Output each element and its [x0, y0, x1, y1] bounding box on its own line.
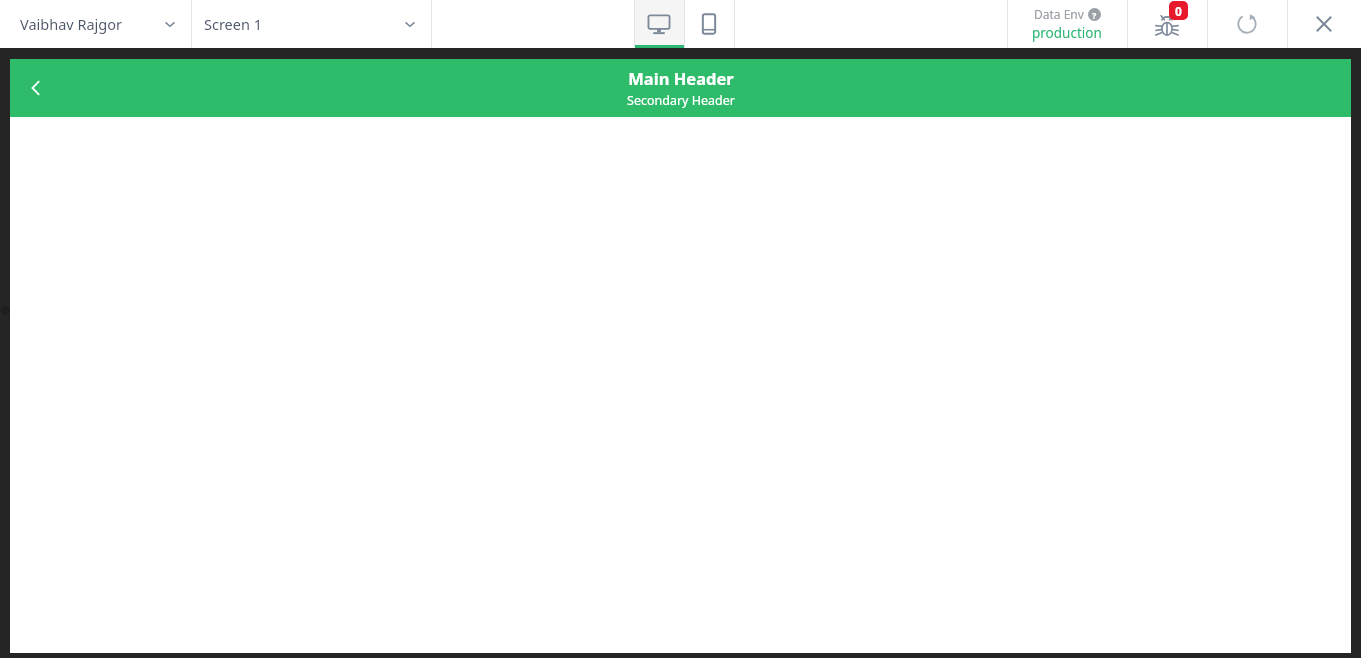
- button[interactable]: Desktop preview: [634, 0, 684, 48]
- button[interactable]: Screen 1: [191, 0, 431, 48]
- staticText: ?: [1092, 9, 1097, 21]
- button[interactable]: Back: [10, 59, 62, 117]
- staticText: production: [1032, 24, 1102, 42]
- button[interactable]: Vaibhav Rajgor: [0, 0, 191, 48]
- button[interactable]: Close: [1287, 0, 1361, 48]
- staticText: Screen 1: [204, 14, 262, 34]
- button[interactable]: Mobile preview: [684, 0, 734, 48]
- staticText: Vaibhav Rajgor: [20, 14, 123, 34]
- button[interactable]: Refresh: [1207, 0, 1287, 48]
- button[interactable]: Debug issues: [1127, 0, 1207, 48]
- button[interactable]: Data Env: [1007, 0, 1127, 48]
- staticText: Data Env: [1034, 6, 1084, 22]
- staticText: Main Header: [628, 67, 734, 89]
- staticText: 0: [1175, 3, 1182, 19]
- staticText: Secondary Header: [627, 92, 735, 109]
